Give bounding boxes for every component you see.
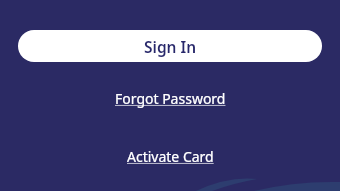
button[interactable]: Activate Card: [127, 147, 214, 166]
button[interactable]: Forgot Password: [115, 89, 226, 108]
staticText: Sign In: [144, 36, 197, 57]
button[interactable]: Sign In: [18, 30, 322, 62]
